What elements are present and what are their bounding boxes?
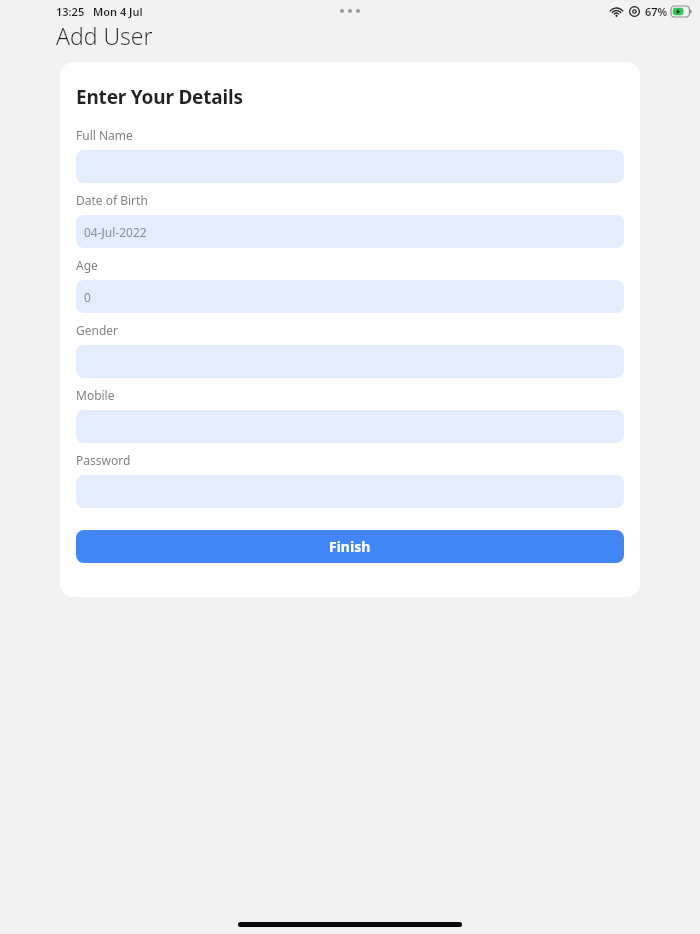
button[interactable]: Finish [76,530,624,563]
staticText: Mon 4 Jul [93,4,143,19]
button[interactable]: 0 [76,280,624,313]
staticText: Date of Birth [76,192,148,208]
staticText: Age [76,257,98,273]
staticText: Enter Your Details [76,84,243,110]
staticText: Add User [56,20,153,51]
staticText: 0 [84,289,91,305]
staticText: Password [76,452,131,468]
staticText: Mobile [76,387,115,403]
staticText: Full Name [76,127,133,143]
button[interactable]: 04-Jul-2022 [76,215,624,248]
staticText: 13:25 [56,4,85,19]
staticText: 67% [645,4,668,19]
staticText: Gender [76,322,119,338]
staticText: Finish [329,537,371,556]
staticText: 04-Jul-2022 [84,224,147,240]
